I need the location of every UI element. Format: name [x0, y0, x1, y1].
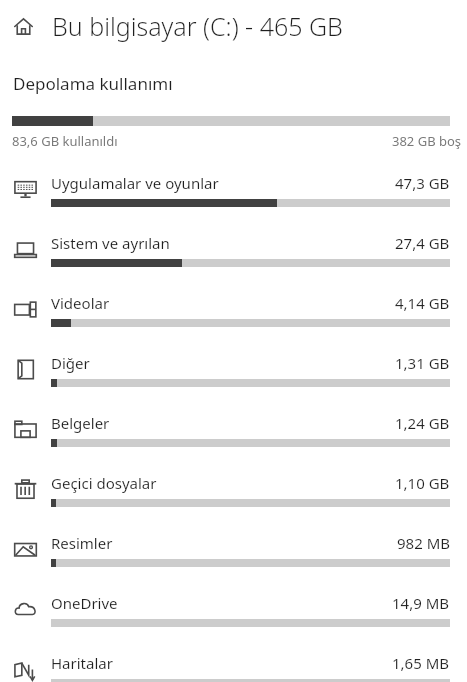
staticText: 982 MB: [397, 533, 450, 553]
staticText: Bu bilgisayar (C:) - 465 GB: [52, 9, 343, 43]
button[interactable]: Ana sayfa: [5, 8, 41, 44]
staticText: 382 GB boş: [392, 132, 462, 150]
button[interactable]: Sistem ve ayrılan: [0, 232, 467, 288]
staticText: Depolama kullanımı: [13, 72, 173, 95]
button[interactable]: Videolar: [0, 292, 467, 348]
staticText: 14,9 MB: [392, 593, 450, 613]
staticText: 4,14 GB: [395, 293, 450, 313]
staticText: Sistem ve ayrılan: [51, 233, 170, 253]
staticText: 27,4 GB: [395, 233, 450, 253]
button[interactable]: Geçici dosyalar: [0, 472, 467, 528]
staticText: 47,3 GB: [395, 173, 450, 193]
staticText: OneDrive: [51, 593, 118, 613]
staticText: Geçici dosyalar: [51, 473, 157, 493]
staticText: 1,65 MB: [392, 653, 450, 673]
staticText: 1,24 GB: [395, 413, 450, 433]
staticText: Videolar: [51, 293, 110, 313]
button[interactable]: Uygulamalar ve oyunlar: [0, 172, 467, 228]
button[interactable]: Belgeler: [0, 412, 467, 468]
staticText: 83,6 GB kullanıldı: [12, 132, 118, 150]
button[interactable]: OneDrive: [0, 592, 467, 648]
staticText: Resimler: [51, 533, 113, 553]
staticText: Belgeler: [51, 413, 110, 433]
staticText: Uygulamalar ve oyunlar: [51, 173, 219, 193]
staticText: 1,31 GB: [395, 353, 450, 373]
staticText: Haritalar: [51, 653, 113, 673]
staticText: Diğer: [51, 353, 90, 373]
button[interactable]: Diğer: [0, 352, 467, 408]
staticText: 1,10 GB: [395, 473, 450, 493]
button[interactable]: Haritalar: [0, 652, 467, 682]
button[interactable]: Resimler: [0, 532, 467, 588]
